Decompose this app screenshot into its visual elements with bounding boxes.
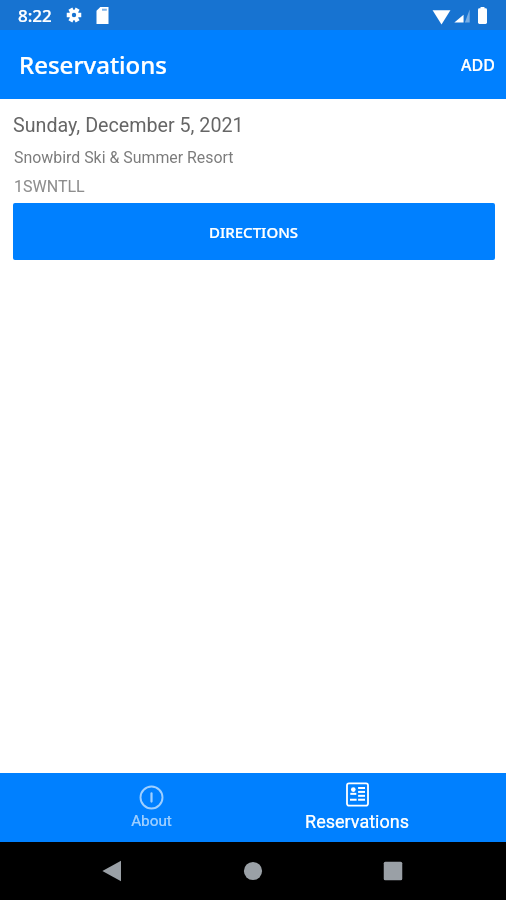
button[interactable]: Home <box>229 847 277 895</box>
staticText: DIRECTIONS <box>209 222 299 242</box>
button[interactable]: Recent apps <box>369 847 417 895</box>
staticText: Sunday, December 5, 2021 <box>13 114 244 137</box>
staticText: ADD <box>461 54 495 76</box>
staticText: Reservations <box>19 48 167 81</box>
button[interactable]: Back <box>91 847 139 895</box>
button[interactable]: About <box>99 773 203 842</box>
button[interactable]: ADD <box>450 30 506 99</box>
staticText: About <box>131 812 172 830</box>
button[interactable]: DIRECTIONS <box>13 203 495 260</box>
staticText: Snowbird Ski & Summer Resort <box>14 148 234 167</box>
staticText: Reservations <box>305 811 409 832</box>
staticText: 1SWNTLL <box>14 177 85 196</box>
button[interactable]: Reservations <box>289 773 425 842</box>
staticText: 8:22 <box>18 4 52 27</box>
